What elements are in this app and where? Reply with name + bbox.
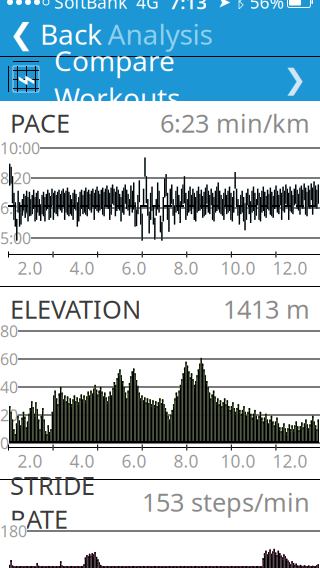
staticText: ➤ — [217, 0, 230, 11]
staticText: 4.0 — [69, 256, 94, 279]
staticText: 2.0 — [17, 256, 42, 279]
staticText: 7:13 — [169, 0, 207, 14]
staticText: 2.0 — [17, 449, 42, 472]
staticText: 1413 m — [223, 292, 310, 326]
staticText: ᛒ — [235, 0, 245, 10]
staticText: Compare Workouts — [54, 42, 180, 116]
staticText: 80 — [0, 320, 18, 342]
staticText: 8.0 — [173, 449, 198, 472]
staticText: PACE — [10, 106, 70, 140]
staticText: Analysis — [107, 15, 212, 53]
staticText: ELEVATION — [10, 292, 141, 326]
staticText: 5:00 — [0, 227, 31, 249]
staticText: 6.0 — [121, 256, 146, 279]
staticText: 0 — [0, 432, 9, 454]
staticText: 10.0 — [220, 256, 255, 279]
button[interactable]: ❮ — [0, 12, 111, 56]
staticText: 8:20 — [0, 167, 31, 189]
staticText: 56% — [249, 0, 283, 13]
staticText: 4.0 — [69, 449, 94, 472]
staticText: 60 — [0, 348, 18, 370]
staticText: 180 — [0, 520, 27, 542]
staticText: 6.0 — [121, 449, 146, 472]
staticText: ⌁ — [16, 61, 35, 97]
staticText: 12.0 — [272, 256, 307, 279]
staticText: Back — [40, 15, 102, 53]
staticText: ❯ — [283, 63, 306, 95]
staticText: 12.0 — [272, 449, 307, 472]
staticText: 4G — [136, 0, 159, 13]
staticText: 8.0 — [173, 256, 198, 279]
staticText: 10.0 — [220, 449, 255, 472]
staticText: 6:23 min/km — [160, 106, 310, 140]
staticText: SoftBank — [54, 0, 127, 13]
staticText: 10:00 — [0, 137, 40, 159]
staticText: 40 — [0, 376, 18, 398]
staticText: 20 — [0, 404, 18, 426]
button[interactable]: ⌁ — [0, 57, 320, 101]
staticText: STRIDE RATE — [10, 468, 95, 536]
staticText: 153 steps/min — [142, 485, 310, 519]
staticText: ❮ — [9, 17, 34, 51]
staticText: 6:40 — [0, 197, 31, 219]
